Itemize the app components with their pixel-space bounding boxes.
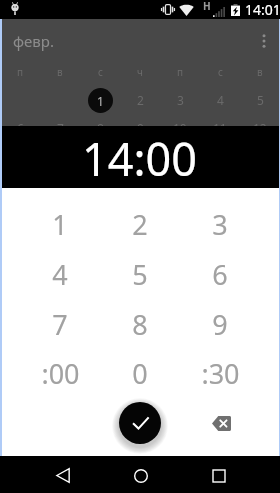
button[interactable]: 5 — [240, 83, 280, 117]
button[interactable]: Confirm time — [119, 402, 161, 444]
staticText: 8 — [97, 120, 104, 126]
staticText: 14:01 — [245, 0, 280, 19]
button[interactable]: Home — [120, 456, 160, 493]
staticText: 2 — [132, 206, 148, 243]
staticText: 7 — [52, 306, 68, 343]
staticText: 6 — [212, 256, 228, 293]
staticText: 11 — [213, 120, 227, 126]
button[interactable]: 4 — [20, 255, 100, 293]
staticText: в — [257, 65, 263, 79]
staticText: п — [177, 65, 184, 79]
button[interactable]: 1 — [20, 205, 100, 243]
staticText: 5 — [257, 92, 264, 108]
button[interactable]: 8 — [100, 305, 180, 343]
button[interactable]: 1 — [80, 83, 120, 117]
staticText: 1 — [97, 93, 104, 109]
button[interactable]: 4 — [200, 83, 240, 117]
staticText: :30 — [201, 355, 240, 392]
staticText: 3 — [177, 92, 184, 108]
button[interactable]: 9 — [180, 305, 260, 343]
button[interactable]: 2 — [120, 83, 160, 117]
staticText: с — [98, 65, 103, 79]
staticText: ч — [137, 65, 143, 79]
staticText: 2 — [137, 92, 144, 108]
button[interactable]: 2 — [100, 205, 180, 243]
button[interactable]: :00 — [20, 354, 100, 392]
staticText: 10 — [173, 120, 187, 126]
staticText: 4 — [52, 256, 68, 293]
staticText: :00 — [41, 355, 80, 392]
staticText: 14:00 — [82, 128, 198, 189]
staticText: февр. — [13, 31, 54, 51]
staticText: 1 — [52, 206, 68, 243]
staticText: 9 — [212, 306, 228, 343]
button[interactable]: 0 — [100, 354, 180, 392]
staticText: 5 — [132, 256, 148, 293]
staticText: 0 — [132, 355, 148, 392]
staticText: п — [17, 65, 24, 79]
button[interactable]: 3 — [180, 205, 260, 243]
staticText: с — [218, 65, 223, 79]
staticText: 7 — [57, 120, 64, 126]
button[interactable]: Recents — [198, 456, 238, 493]
staticText: 6 — [17, 120, 24, 126]
staticText: H — [203, 0, 211, 13]
button[interactable]: :30 — [180, 354, 260, 392]
staticText: 8 — [132, 306, 148, 343]
staticText: 12 — [253, 120, 267, 126]
button[interactable]: Back — [42, 456, 82, 493]
button[interactable]: Backspace — [201, 403, 241, 443]
button[interactable]: More options — [250, 27, 278, 55]
button[interactable]: 3 — [160, 83, 200, 117]
staticText: 9 — [137, 120, 144, 126]
button[interactable]: 6 — [180, 255, 260, 293]
staticText: 3 — [212, 206, 228, 243]
staticText: в — [57, 65, 63, 79]
button[interactable]: 5 — [100, 255, 180, 293]
staticText: 4 — [217, 92, 224, 108]
button[interactable]: 7 — [20, 305, 100, 343]
